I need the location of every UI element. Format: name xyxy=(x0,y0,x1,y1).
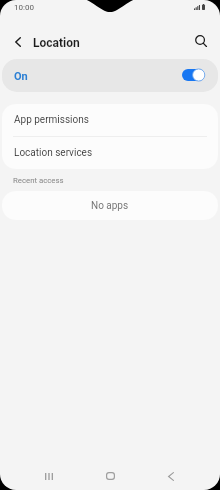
button[interactable]: Back xyxy=(157,462,185,490)
button[interactable]: Recent apps xyxy=(35,462,63,490)
button[interactable]: No apps xyxy=(2,191,218,220)
button[interactable]: Navigate up xyxy=(4,28,32,56)
staticText: No apps xyxy=(91,200,129,212)
button[interactable]: Search xyxy=(187,27,215,55)
button[interactable]: Home xyxy=(96,462,124,490)
staticText: Location xyxy=(33,36,80,50)
button[interactable]: On xyxy=(2,59,218,92)
staticText: 10:00 xyxy=(14,3,34,12)
staticText: App permissions xyxy=(14,114,89,126)
staticText: On xyxy=(14,70,28,83)
staticText: Recent access xyxy=(13,176,64,185)
button[interactable]: Location services xyxy=(2,137,218,169)
staticText: Location services xyxy=(14,147,93,159)
button[interactable]: App permissions xyxy=(2,104,218,136)
